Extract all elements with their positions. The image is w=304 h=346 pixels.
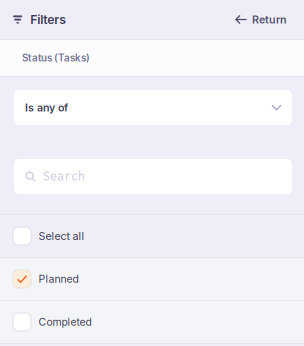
staticText: Return [252,13,287,26]
button[interactable]: Filters [0,0,74,39]
staticText: Filters [30,12,66,27]
staticText: Is any of [25,101,68,114]
button[interactable]: Planned [0,258,304,300]
staticText: Status (Tasks) [22,52,90,64]
staticText: Select all [38,229,84,242]
staticText: Completed [38,316,91,328]
button[interactable]: Return [227,0,304,39]
staticText: Planned [38,273,78,285]
button[interactable]: Completed [0,301,304,343]
button[interactable]: Is any of [14,90,292,125]
staticText: Search [43,170,85,183]
button[interactable]: Select all [0,215,304,257]
button[interactable]: Search [14,159,292,194]
